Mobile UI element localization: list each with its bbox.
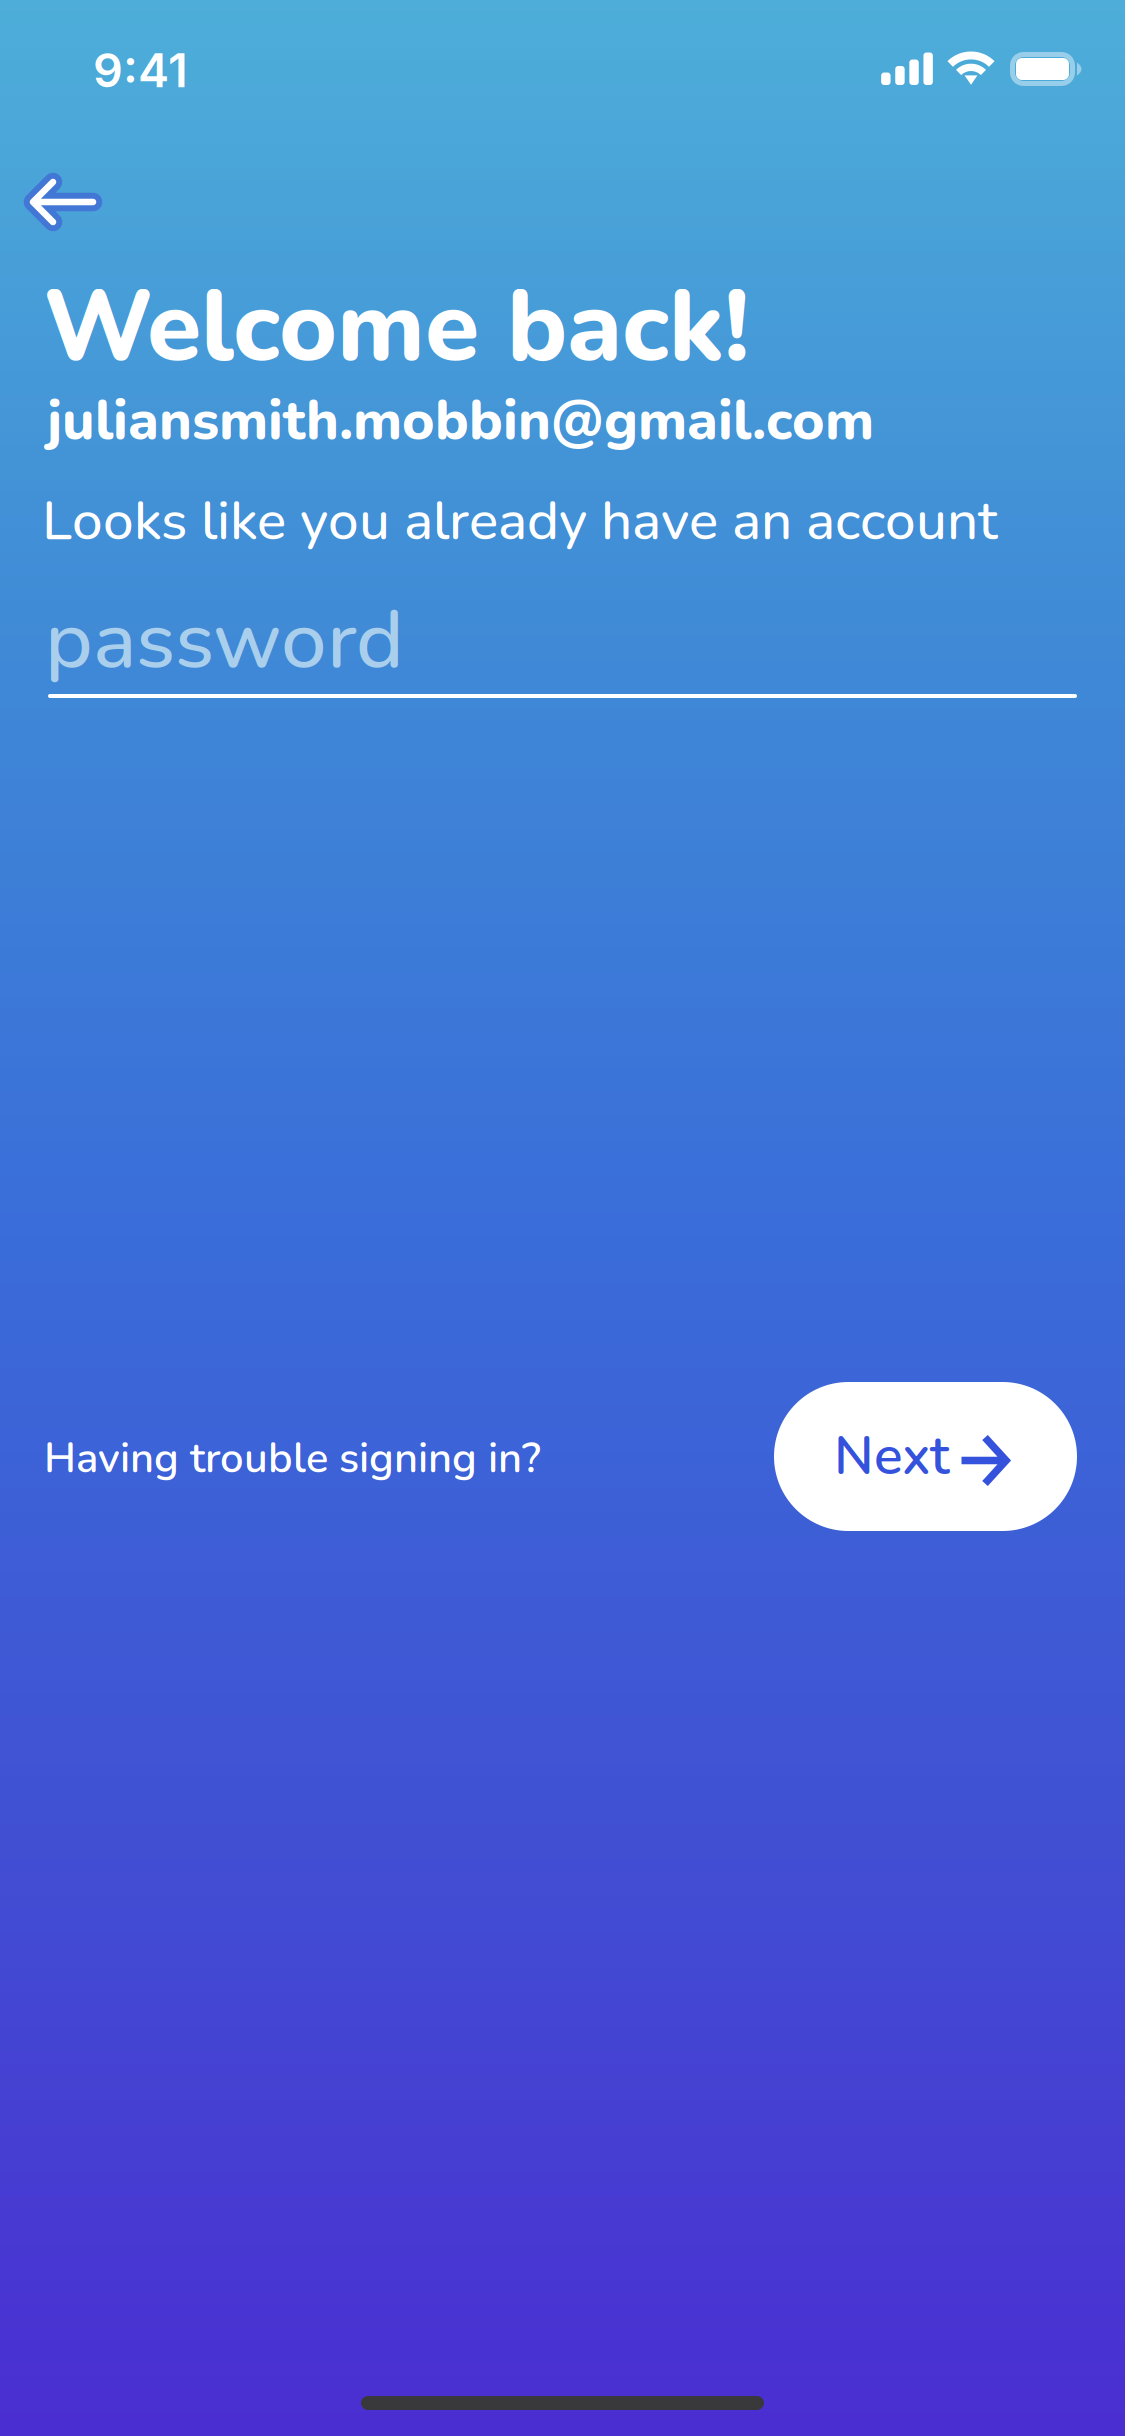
button[interactable]: Having trouble signing in? xyxy=(44,1416,555,1501)
staticText: password xyxy=(45,585,404,696)
staticText: 9:41 xyxy=(93,42,188,98)
staticText: juliansmith.mobbin@gmail.com xyxy=(47,383,874,458)
staticText: Looks like you already have an account xyxy=(42,484,998,559)
staticText: Next xyxy=(834,1420,949,1493)
button[interactable]: Next xyxy=(774,1382,1077,1531)
button[interactable]: Back xyxy=(5,148,135,264)
staticText: Having trouble signing in? xyxy=(44,1430,541,1487)
staticText: Welcome back! xyxy=(43,260,750,395)
